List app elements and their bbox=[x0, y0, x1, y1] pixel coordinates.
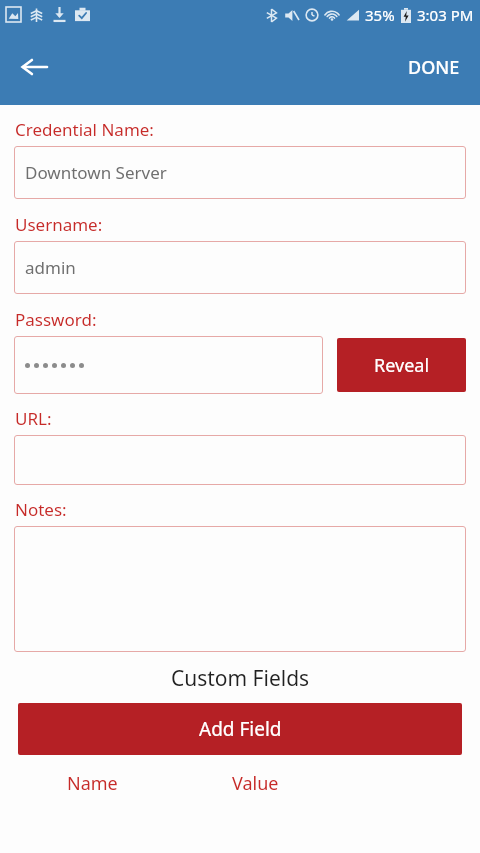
button[interactable] bbox=[14, 526, 466, 652]
button[interactable]: DONE bbox=[400, 47, 468, 88]
staticText: Password: bbox=[15, 308, 97, 331]
staticText: Notes: bbox=[15, 498, 67, 521]
staticText: URL: bbox=[15, 407, 52, 430]
staticText: 35% bbox=[365, 5, 395, 25]
button[interactable]: Add Field bbox=[18, 703, 462, 755]
staticText: 3:03 PM bbox=[417, 5, 474, 25]
button[interactable]: Downtown Server bbox=[14, 146, 466, 199]
staticText: Reveal bbox=[374, 353, 430, 378]
button[interactable]: admin bbox=[14, 241, 466, 294]
staticText: Credential Name: bbox=[15, 118, 154, 141]
staticText: Value bbox=[232, 771, 279, 796]
button[interactable] bbox=[14, 435, 466, 485]
staticText: Username: bbox=[15, 213, 103, 236]
staticText: Custom Fields bbox=[0, 664, 480, 693]
staticText: Add Field bbox=[199, 716, 282, 742]
staticText: Name bbox=[67, 771, 118, 796]
button[interactable]: Back bbox=[10, 43, 58, 91]
button[interactable]: Reveal bbox=[337, 338, 466, 392]
staticText: Downtown Server bbox=[25, 161, 167, 184]
staticText: DONE bbox=[408, 55, 460, 80]
staticText: admin bbox=[25, 256, 76, 279]
button[interactable] bbox=[14, 336, 323, 394]
